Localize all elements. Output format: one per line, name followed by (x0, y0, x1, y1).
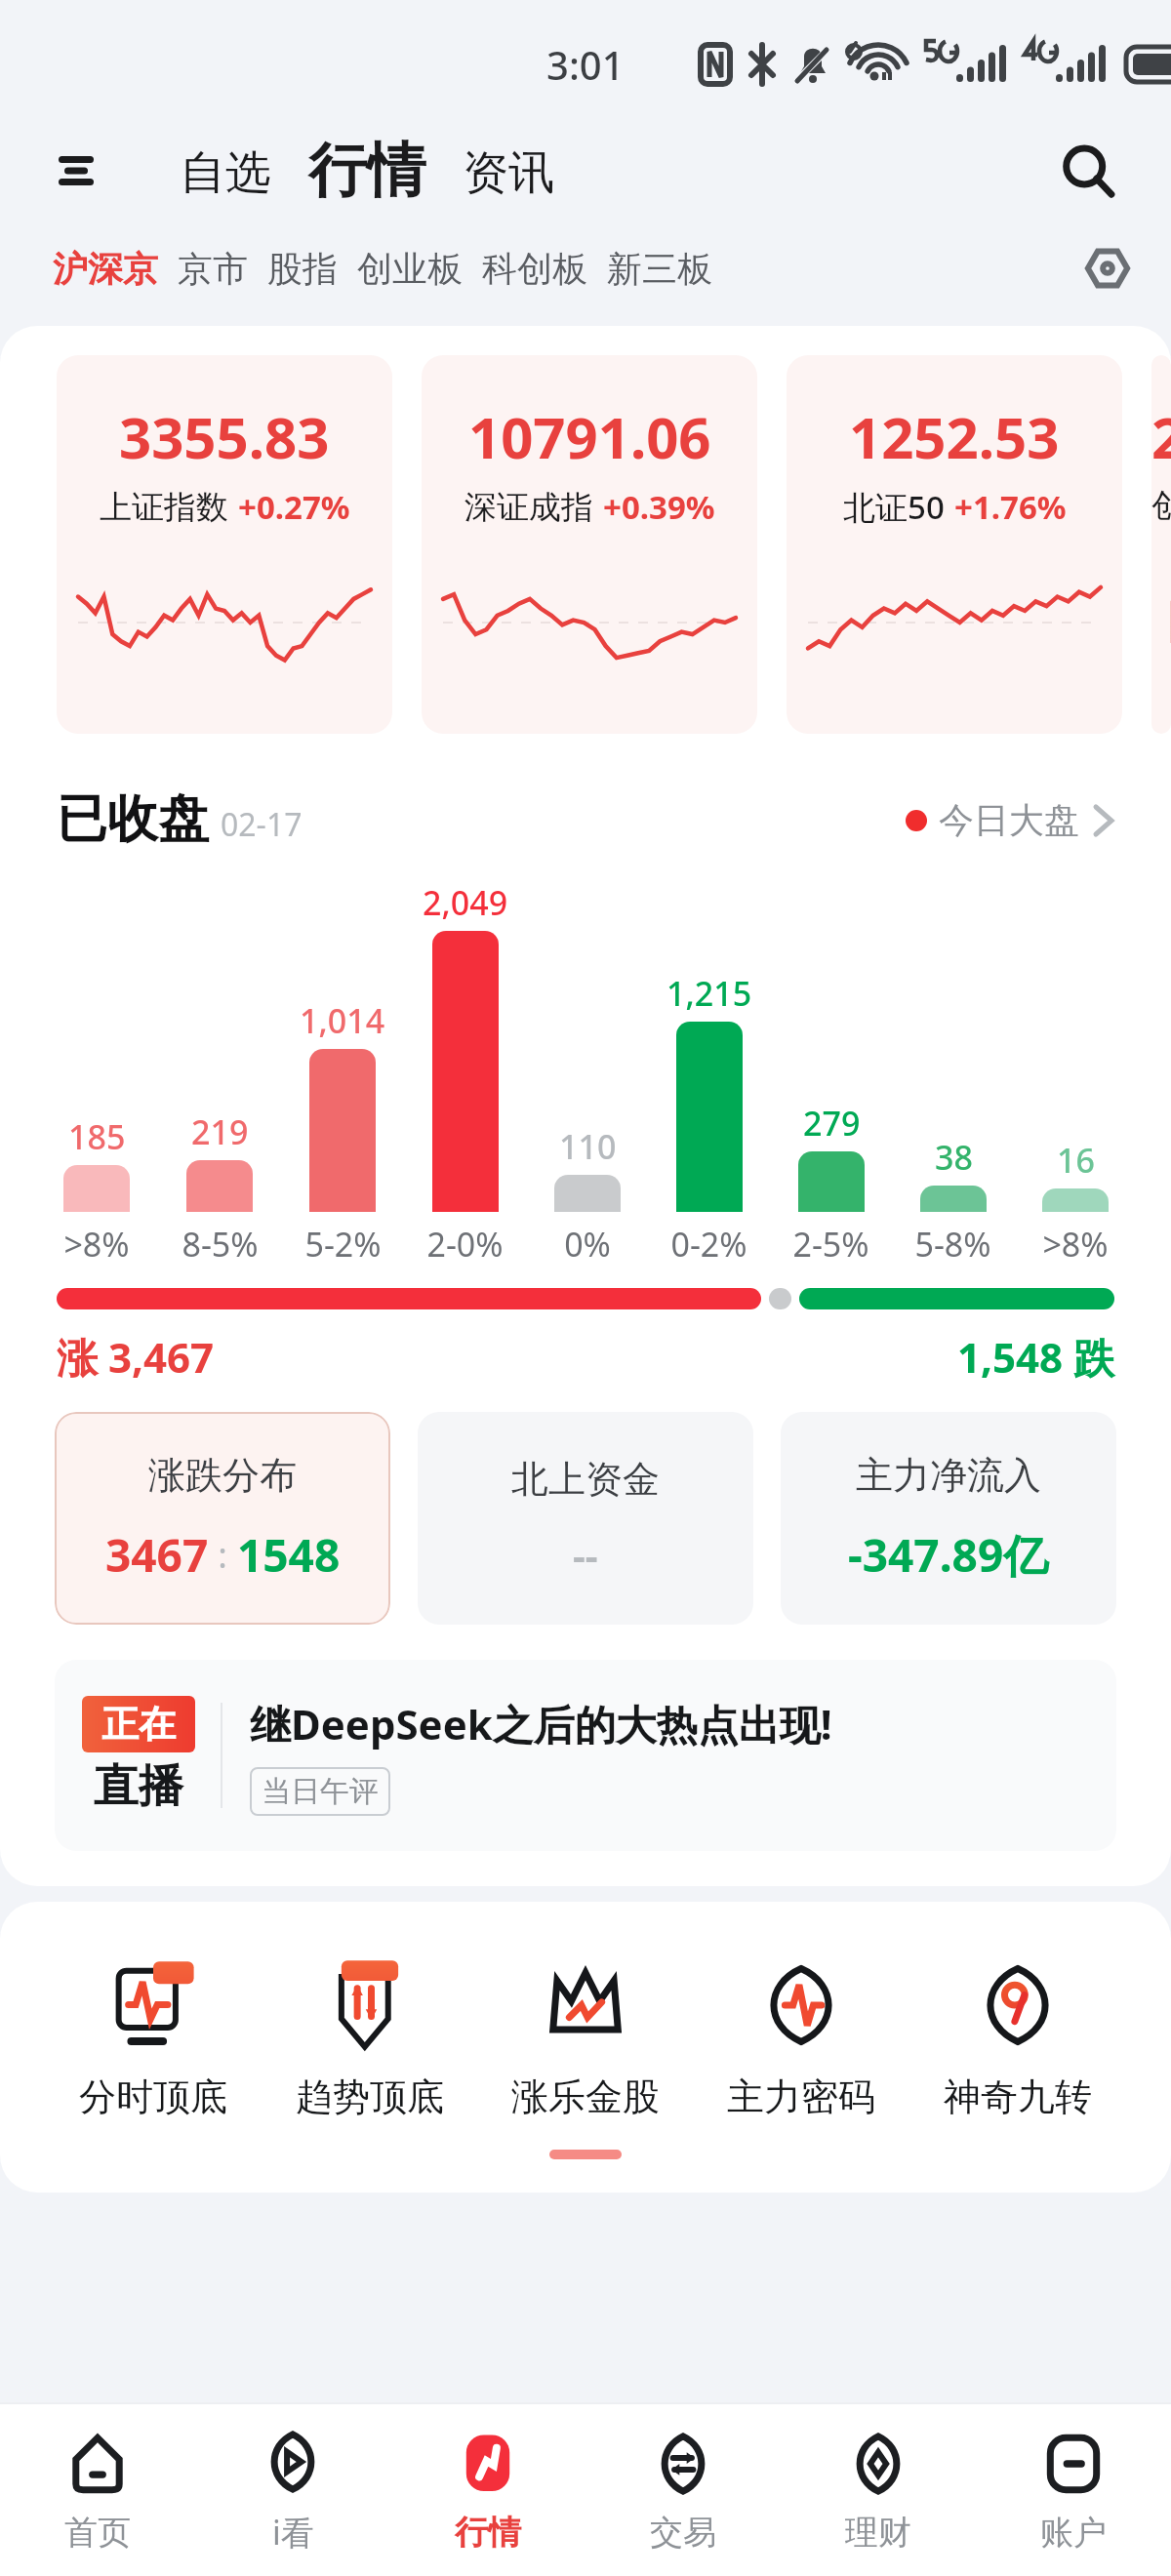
button[interactable]: 理财 (781, 2404, 976, 2576)
button[interactable]: 行情 (390, 2404, 585, 2576)
staticText: 科创板 (482, 247, 587, 291)
staticText: 已收盘 (57, 787, 209, 852)
staticText: 当日午评 (262, 1773, 379, 1810)
button[interactable]: 神奇九转 (936, 1954, 1100, 2120)
staticText: 行情 (308, 134, 425, 208)
staticText: 0% (564, 1222, 611, 1265)
staticText: 主力净流入 (856, 1452, 1041, 1499)
staticText: 1548 (237, 1524, 341, 1586)
staticText: 神奇九转 (944, 2073, 1092, 2120)
staticText: 分时顶底 (79, 2073, 227, 2120)
staticText: 2 (1151, 398, 1171, 475)
staticText: 涨 3,467 (57, 1329, 214, 1385)
staticText: 279 (803, 1101, 861, 1146)
button[interactable]: 菜单 (47, 141, 105, 200)
staticText: 账户 (1040, 2512, 1107, 2554)
staticText: 趋势顶底 (296, 2073, 444, 2120)
staticText: 正在 (101, 1701, 176, 1748)
staticText: 行情 (455, 2512, 521, 2554)
staticText: +0.27% (238, 485, 350, 529)
staticText: 185 (68, 1114, 126, 1159)
button[interactable]: 板块设置 (1075, 236, 1140, 301)
staticText: 北证50 (843, 485, 945, 529)
staticText: 2,049 (423, 880, 508, 925)
staticText: 219 (191, 1109, 249, 1154)
button[interactable]: 今日大盘 (906, 798, 1114, 842)
staticText: 1,548 跌 (957, 1329, 1114, 1385)
button[interactable]: 3355.83 (57, 355, 392, 734)
button[interactable]: 行情 (303, 132, 431, 210)
staticText: -- (573, 1528, 598, 1581)
staticText: 1,014 (300, 998, 385, 1043)
button[interactable]: 分时顶底 (71, 1954, 235, 2120)
button[interactable]: 1252.53 (787, 355, 1122, 734)
staticText: 2-5% (792, 1222, 869, 1265)
staticText: 1252.53 (849, 398, 1060, 475)
button[interactable]: i看 (195, 2404, 390, 2576)
button[interactable]: 趋势顶底 (288, 1954, 452, 2120)
staticText: 10791.06 (468, 398, 711, 475)
staticText: 创 (1151, 485, 1171, 526)
staticText: 理财 (845, 2512, 911, 2554)
staticText: 直播 (94, 1758, 183, 1815)
staticText: 沪深京 (53, 247, 158, 291)
staticText: 上证指数 (100, 487, 228, 528)
staticText: >8% (63, 1222, 130, 1265)
staticText: 股指 (267, 247, 338, 291)
staticText: 今日大盘 (939, 798, 1079, 842)
staticText: 3:01 (546, 38, 625, 91)
button[interactable]: 主力净流入 (781, 1412, 1116, 1625)
staticText: 3355.83 (119, 398, 330, 475)
staticText: 继DeepSeek之后的大热点出现! (250, 1696, 832, 1751)
staticText: 1,215 (666, 971, 752, 1016)
staticText: 5-8% (914, 1222, 991, 1265)
button[interactable]: 新三板 (597, 239, 722, 299)
button[interactable]: 账户 (976, 2404, 1171, 2576)
staticText: 涨乐金股 (511, 2073, 660, 2120)
staticText: 北上资金 (511, 1456, 660, 1503)
staticText: 5-2% (304, 1222, 382, 1265)
staticText: 资讯 (463, 144, 554, 202)
button[interactable]: 交易 (585, 2404, 781, 2576)
staticText: 自选 (180, 144, 271, 202)
staticText: 16 (1057, 1138, 1095, 1183)
button[interactable]: 10791.06 (422, 355, 757, 734)
staticText: 8-5% (182, 1222, 259, 1265)
staticText: 新三板 (607, 247, 712, 291)
staticText: 38 (935, 1135, 973, 1180)
button[interactable]: 沪深京 (43, 239, 168, 299)
staticText: : (209, 1531, 237, 1579)
button[interactable]: 资讯 (457, 137, 560, 210)
staticText: 0-2% (670, 1222, 747, 1265)
button[interactable]: 创业板 (347, 239, 472, 299)
button[interactable]: 自选 (174, 137, 277, 210)
button[interactable]: 涨跌分布 (55, 1412, 390, 1625)
staticText: 交易 (650, 2512, 716, 2554)
staticText: -347.89亿 (848, 1524, 1049, 1586)
staticText: 创业板 (357, 247, 463, 291)
staticText: 京市 (178, 247, 248, 291)
staticText: 3467 (105, 1524, 209, 1586)
staticText: +0.39% (603, 485, 715, 529)
button[interactable]: 主力密码 (719, 1954, 883, 2120)
staticText: 涨跌分布 (148, 1452, 297, 1499)
staticText: +1.76% (954, 485, 1067, 529)
staticText: 首页 (64, 2512, 131, 2554)
button[interactable]: 北上资金 (418, 1412, 753, 1625)
staticText: 02-17 (221, 803, 303, 846)
staticText: 主力密码 (727, 2073, 875, 2120)
staticText: >8% (1042, 1222, 1109, 1265)
button[interactable]: 科创板 (472, 239, 597, 299)
staticText: 2-0% (426, 1222, 504, 1265)
staticText: i看 (272, 2510, 314, 2555)
button[interactable]: 2 (1151, 355, 1171, 734)
button[interactable]: 搜索 (1048, 132, 1126, 210)
button[interactable]: 京市 (168, 239, 258, 299)
button[interactable]: 股指 (258, 239, 347, 299)
button[interactable]: 首页 (0, 2404, 195, 2576)
button[interactable]: 涨乐金股 (504, 1954, 667, 2120)
staticText: 深证成指 (464, 487, 593, 528)
staticText: 110 (559, 1124, 617, 1169)
button[interactable]: 正在 (55, 1660, 1116, 1851)
